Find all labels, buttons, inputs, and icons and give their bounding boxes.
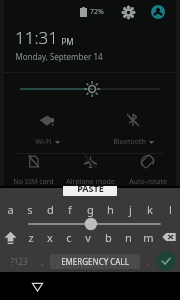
- button[interactable]: d: [40, 196, 60, 222]
- button[interactable]: a: [0, 196, 20, 222]
- button[interactable]: Airplane mode: [62, 154, 119, 186]
- staticText: a: [7, 202, 14, 217]
- button[interactable]: Backspace: [158, 224, 180, 250]
- staticText: 72%: [90, 7, 104, 17]
- staticText: No SIM card: [13, 177, 54, 186]
- staticText: l: [169, 202, 172, 217]
- staticText: m: [143, 230, 154, 245]
- button[interactable]: Wi-Fi: [4, 105, 90, 153]
- button[interactable]: g: [80, 196, 100, 222]
- staticText: c: [66, 230, 72, 245]
- staticText: .: [147, 255, 150, 267]
- staticText: x: [47, 230, 53, 245]
- button[interactable]: ?123: [4, 250, 34, 272]
- staticText: v: [85, 230, 91, 245]
- button[interactable]: z: [21, 224, 40, 250]
- staticText: 11:31: [15, 26, 58, 49]
- button[interactable]: Auto-rotate: [119, 154, 176, 186]
- staticText: s: [27, 202, 33, 217]
- button[interactable]: l: [160, 196, 180, 222]
- button[interactable]: Shift: [0, 224, 21, 250]
- staticText: n: [125, 230, 132, 245]
- staticText: Auto-rotate: [129, 177, 167, 186]
- staticText: k: [147, 202, 153, 217]
- staticText: Wi-Fi: [35, 137, 52, 147]
- button[interactable]: Settings: [118, 2, 138, 22]
- staticText: b: [105, 230, 112, 245]
- button[interactable]: Enter: [156, 251, 176, 271]
- staticText: d: [47, 202, 54, 217]
- staticText: g: [87, 202, 94, 217]
- staticText: Bluetooth: [113, 137, 146, 147]
- button[interactable]: b: [98, 224, 118, 250]
- button[interactable]: No SIM card: [4, 154, 62, 186]
- staticText: j: [129, 202, 132, 217]
- button[interactable]: h: [100, 196, 120, 222]
- staticText: PM: [61, 36, 74, 47]
- button[interactable]: Bluetooth: [90, 105, 176, 153]
- button[interactable]: 72%: [80, 7, 104, 17]
- button[interactable]: x: [40, 224, 59, 250]
- button[interactable]: k: [140, 196, 160, 222]
- staticText: ?123: [10, 256, 28, 267]
- button[interactable]: v: [78, 224, 98, 250]
- button[interactable]: PASTE: [63, 179, 117, 196]
- staticText: h: [107, 202, 114, 217]
- button[interactable]: Back: [22, 272, 52, 300]
- button[interactable]: j: [120, 196, 140, 222]
- button[interactable]: f: [60, 196, 80, 222]
- staticText: PASTE: [77, 182, 104, 194]
- staticText: Airplane mode: [66, 177, 115, 186]
- staticText: ,: [41, 255, 44, 267]
- staticText: z: [28, 230, 34, 245]
- staticText: EMERGENCY CALL: [61, 256, 129, 267]
- button[interactable]: [4, 73, 176, 105]
- button[interactable]: EMERGENCY CALL: [50, 254, 140, 269]
- button[interactable]: n: [118, 224, 138, 250]
- button[interactable]: m: [138, 224, 158, 250]
- button[interactable]: User profile: [148, 2, 168, 22]
- button[interactable]: s: [20, 196, 40, 222]
- button[interactable]: c: [59, 224, 78, 250]
- staticText: f: [68, 202, 72, 217]
- staticText: Monday, September 14: [15, 51, 103, 62]
